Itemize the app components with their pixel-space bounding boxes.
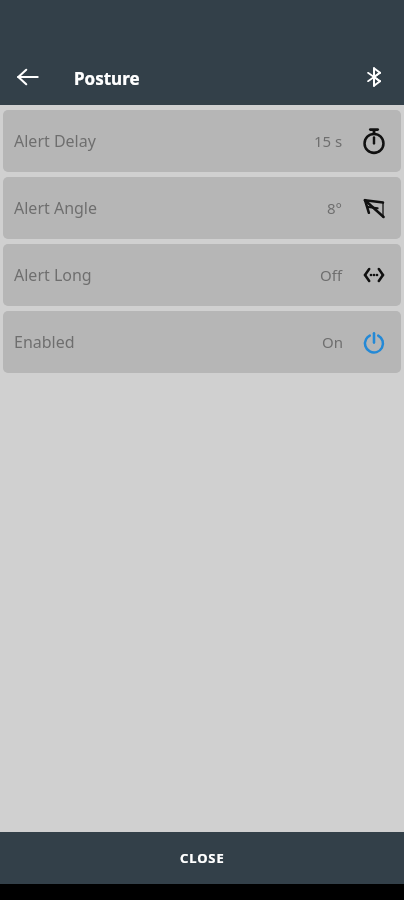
staticText: On [322,332,343,352]
button[interactable]: Alert Angle [3,177,401,239]
staticText: 15 s [314,131,343,151]
button[interactable]: CLOSE [0,832,404,884]
staticText: 8° [327,198,343,218]
staticText: CLOSE [180,849,225,867]
staticText: Posture [74,67,140,90]
button[interactable]: Enabled [3,311,401,373]
button[interactable]: Alert Long [3,244,401,306]
staticText: Off [320,265,343,285]
button[interactable]: Alert Delay [3,110,401,172]
staticText: Alert Angle [14,197,98,219]
button[interactable]: Bluetooth [352,55,396,99]
staticText: Alert Long [14,264,92,286]
staticText: Enabled [14,331,75,353]
button[interactable]: Back [6,55,50,99]
staticText: Alert Delay [14,130,96,152]
